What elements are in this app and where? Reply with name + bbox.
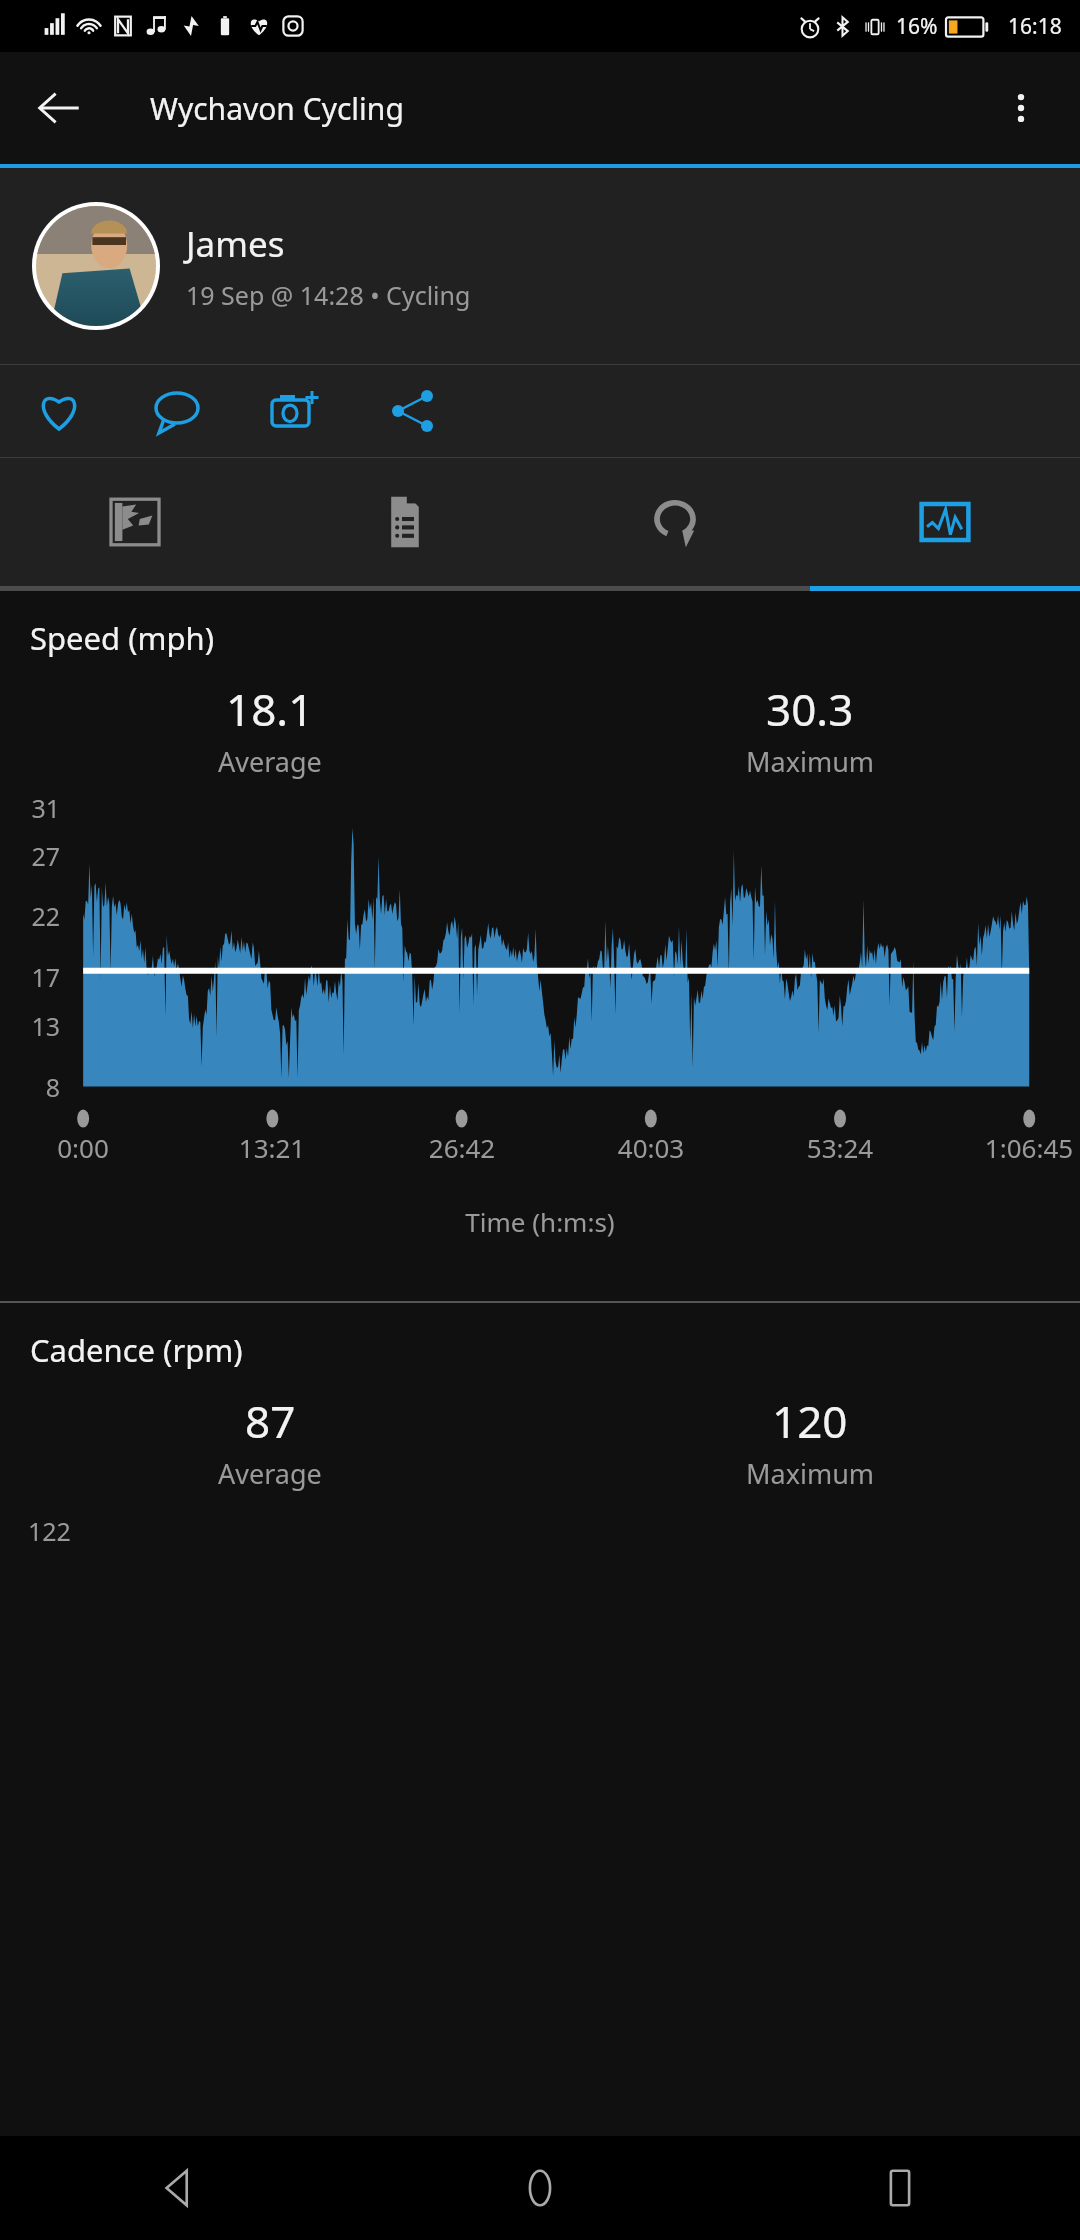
staticText: 0:00 <box>0 1130 168 1165</box>
button[interactable]: Add photo <box>252 368 338 454</box>
button[interactable]: Home <box>360 2136 720 2240</box>
button[interactable]: Laps <box>540 458 810 586</box>
staticText: 19 Sep @ 14:28 • Cycling <box>186 278 471 312</box>
staticText: 53:24 <box>755 1130 925 1165</box>
staticText: Cadence (rpm) <box>30 1329 243 1371</box>
staticText: 26:42 <box>377 1130 547 1165</box>
staticText: Time (h:m:s) <box>0 1204 1080 1239</box>
staticText: 18.1 <box>226 679 314 739</box>
button[interactable]: James <box>0 168 1080 364</box>
button[interactable]: Back <box>0 2136 360 2240</box>
staticText: 27 <box>0 839 60 873</box>
staticText: 13 <box>0 1009 60 1043</box>
staticText: 16:18 <box>1008 12 1062 41</box>
button[interactable]: Comment <box>134 368 220 454</box>
button[interactable]: Recent apps <box>720 2136 1080 2240</box>
staticText: 8 <box>0 1070 60 1104</box>
staticText: 87 <box>245 1391 296 1451</box>
staticText: Speed (mph) <box>30 617 214 659</box>
staticText: 120 <box>772 1391 848 1451</box>
button[interactable]: Details <box>270 458 540 586</box>
staticText: 1:06:45 <box>944 1130 1080 1165</box>
staticText: 30.3 <box>766 679 854 739</box>
button[interactable]: More options <box>984 71 1058 145</box>
staticText: 16% <box>896 12 938 41</box>
staticText: Average <box>218 743 322 780</box>
button[interactable]: Charts <box>810 458 1080 586</box>
staticText: 122 <box>28 1514 71 1548</box>
staticText: 31 <box>0 791 60 825</box>
staticText: 17 <box>0 960 60 994</box>
staticText: Maximum <box>746 1455 875 1492</box>
button[interactable]: Like <box>16 368 102 454</box>
button[interactable]: Map <box>0 458 270 586</box>
button[interactable]: Share <box>370 368 456 454</box>
staticText: Wychavon Cycling <box>150 88 404 129</box>
staticText: Average <box>218 1455 322 1492</box>
staticText: 13:21 <box>187 1130 357 1165</box>
staticText: 40:03 <box>566 1130 736 1165</box>
staticText: James <box>186 220 285 268</box>
staticText: Maximum <box>746 743 875 780</box>
button[interactable]: Back <box>22 71 96 145</box>
staticText: 22 <box>0 899 60 933</box>
